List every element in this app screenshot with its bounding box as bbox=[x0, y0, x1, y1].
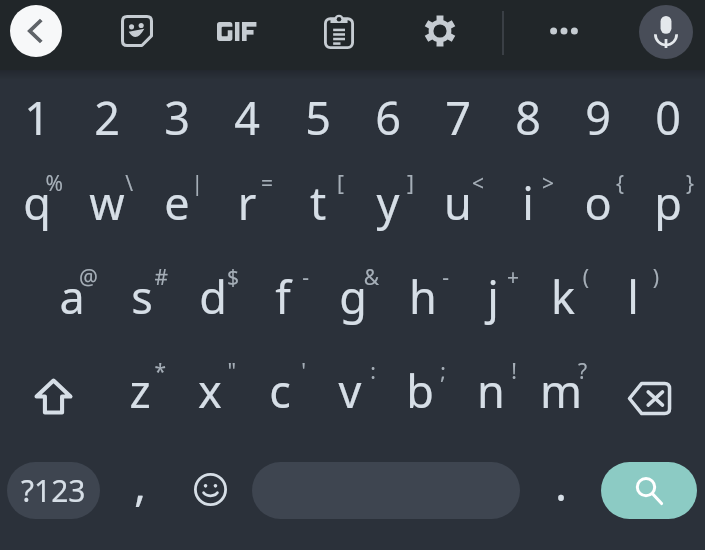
button[interactable]: v bbox=[315, 346, 385, 440]
button[interactable]: l bbox=[598, 252, 668, 346]
staticText: 4 bbox=[212, 87, 282, 148]
staticText: d bbox=[178, 266, 248, 327]
button[interactable]: s bbox=[107, 252, 177, 346]
staticText: t bbox=[283, 172, 353, 233]
button[interactable]: e bbox=[142, 158, 212, 252]
staticText: w bbox=[72, 172, 142, 233]
button[interactable]: z bbox=[105, 346, 175, 440]
staticText: y bbox=[353, 172, 423, 233]
staticText: $ bbox=[169, 263, 239, 292]
button[interactable]: 1 bbox=[2, 70, 72, 158]
button[interactable]: p bbox=[633, 158, 703, 252]
button[interactable]: x bbox=[175, 346, 245, 440]
staticText: ? bbox=[517, 357, 587, 386]
button[interactable]: m bbox=[526, 346, 596, 440]
button[interactable]: Backspace bbox=[614, 346, 684, 440]
button[interactable]: n bbox=[456, 346, 526, 440]
button[interactable]: c bbox=[245, 346, 315, 440]
button[interactable]: q bbox=[2, 158, 72, 252]
button[interactable]: 4 bbox=[212, 70, 282, 158]
button[interactable]: d bbox=[178, 252, 248, 346]
staticText: o bbox=[563, 172, 633, 233]
button[interactable]: Back bbox=[10, 5, 62, 57]
button[interactable]: Settings bbox=[413, 6, 467, 56]
button[interactable]: k bbox=[528, 252, 598, 346]
button[interactable]: 6 bbox=[353, 70, 423, 158]
button[interactable]: , bbox=[105, 440, 175, 550]
button[interactable]: 2 bbox=[72, 70, 142, 158]
button[interactable]: Stickers bbox=[110, 6, 164, 56]
staticText: 2 bbox=[72, 87, 142, 148]
staticText: @ bbox=[28, 263, 98, 292]
button[interactable]: ?123 bbox=[7, 462, 100, 519]
button[interactable]: Shift bbox=[18, 346, 88, 440]
button[interactable]: 3 bbox=[142, 70, 212, 158]
staticText: 8 bbox=[493, 87, 563, 148]
staticText: ?123 bbox=[21, 470, 86, 511]
staticText: } bbox=[624, 169, 694, 198]
button[interactable]: GIF bbox=[207, 8, 269, 54]
button[interactable]: Clipboard bbox=[313, 5, 365, 58]
staticText: : bbox=[306, 357, 376, 386]
staticText: i bbox=[493, 172, 563, 233]
staticText: a bbox=[37, 266, 107, 327]
button[interactable]: r bbox=[212, 158, 282, 252]
staticText: ] bbox=[344, 169, 414, 198]
staticText: \ bbox=[63, 169, 133, 198]
button[interactable]: 7 bbox=[423, 70, 493, 158]
staticText: b bbox=[385, 360, 455, 421]
staticText: 7 bbox=[423, 87, 493, 148]
staticText: & bbox=[309, 263, 379, 292]
staticText: r bbox=[212, 172, 282, 233]
staticText: = bbox=[203, 169, 273, 198]
staticText: [ bbox=[274, 169, 344, 198]
staticText: + bbox=[449, 263, 519, 292]
button[interactable]: Voice input bbox=[639, 5, 693, 59]
button[interactable]: 0 bbox=[633, 70, 703, 158]
button[interactable]: y bbox=[353, 158, 423, 252]
button[interactable]: 8 bbox=[493, 70, 563, 158]
staticText: z bbox=[105, 360, 175, 421]
staticText: ; bbox=[376, 357, 446, 386]
button[interactable]: u bbox=[423, 158, 493, 252]
staticText: g bbox=[318, 266, 388, 327]
button[interactable]: a bbox=[37, 252, 107, 346]
button[interactable]: i bbox=[493, 158, 563, 252]
button[interactable]: o bbox=[563, 158, 633, 252]
staticText: m bbox=[526, 360, 596, 421]
button[interactable]: b bbox=[385, 346, 455, 440]
staticText: u bbox=[423, 172, 493, 233]
button[interactable]: Emoji bbox=[176, 440, 246, 550]
button[interactable]: g bbox=[318, 252, 388, 346]
staticText: 6 bbox=[353, 87, 423, 148]
staticText: f bbox=[248, 266, 318, 327]
button[interactable]: Search bbox=[601, 462, 697, 519]
button[interactable]: f bbox=[248, 252, 318, 346]
staticText: - bbox=[239, 263, 309, 292]
button[interactable]: w bbox=[72, 158, 142, 252]
staticText: , bbox=[105, 453, 175, 514]
staticText: { bbox=[554, 169, 624, 198]
staticText: k bbox=[528, 266, 598, 327]
staticText: . bbox=[526, 453, 596, 514]
staticText: x bbox=[175, 360, 245, 421]
staticText: e bbox=[142, 172, 212, 233]
button[interactable]: . bbox=[526, 440, 596, 550]
button[interactable]: 9 bbox=[563, 70, 633, 158]
button[interactable]: h bbox=[388, 252, 458, 346]
staticText: ) bbox=[589, 263, 659, 292]
staticText: ! bbox=[447, 357, 517, 386]
button[interactable]: Space bbox=[252, 462, 520, 519]
staticText: ( bbox=[519, 263, 589, 292]
button[interactable]: 5 bbox=[283, 70, 353, 158]
staticText: ' bbox=[236, 357, 306, 386]
button[interactable]: More options bbox=[540, 9, 588, 53]
staticText: s bbox=[107, 266, 177, 327]
staticText: - bbox=[379, 263, 449, 292]
button[interactable]: t bbox=[283, 158, 353, 252]
staticText: 3 bbox=[142, 87, 212, 148]
staticText: # bbox=[98, 263, 168, 292]
staticText: * bbox=[96, 357, 166, 386]
staticText: " bbox=[166, 357, 236, 386]
button[interactable]: j bbox=[458, 252, 528, 346]
